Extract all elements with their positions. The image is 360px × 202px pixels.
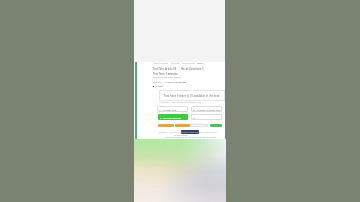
staticText: Answer: [156, 85, 164, 88]
button[interactable]: Action: [175, 124, 190, 127]
staticText: 1. Enter the answer: [165, 81, 187, 84]
staticText: Read the test instructions carefully: [153, 76, 181, 78]
button[interactable]: D. ..: [191, 114, 222, 120]
staticText: C. Correct answer: [160, 116, 181, 119]
staticText: Menu: [197, 61, 204, 64]
staticText: Best answer for question 100: [172, 101, 201, 104]
staticText: D. ..: [193, 116, 198, 119]
button[interactable]: Menu: [197, 61, 204, 64]
staticText: A. Answer one: [159, 108, 177, 111]
button[interactable]: Action: [158, 114, 188, 120]
button[interactable]: Online Exam: [154, 61, 169, 64]
button[interactable]: Action: [210, 124, 222, 127]
staticText: Submit answers: [174, 134, 189, 137]
staticText: Test Time: 5 minutes: [153, 72, 178, 75]
staticText: Question 1 of 5 - Test 5 questions remai…: [159, 131, 217, 134]
staticText: This exam is free, you can see other tes…: [165, 136, 217, 139]
button[interactable]: A. Answer one: [157, 106, 188, 112]
button[interactable]: [190, 124, 208, 127]
staticText: Articles: [171, 61, 180, 64]
staticText: Test Title: Article 95: [153, 67, 177, 70]
staticText: Character:: [159, 101, 170, 104]
button[interactable]: Action: [158, 124, 174, 127]
button[interactable]: Test results: [182, 61, 195, 64]
button[interactable]: Articles: [171, 61, 180, 64]
button[interactable]: Test here if there is 10 available in th…: [159, 90, 225, 101]
staticText: Question:: [153, 81, 163, 84]
staticText: Test results: [182, 61, 195, 64]
button[interactable]: Action: [181, 130, 199, 134]
staticText: B. Answer number two: [193, 108, 221, 111]
staticText: No. of Questions: 5: [181, 67, 204, 70]
staticText: Online Exam: [154, 61, 169, 64]
staticText: Test here if there is 10 available in th…: [164, 94, 220, 98]
button[interactable]: B. Answer number two: [191, 106, 222, 112]
